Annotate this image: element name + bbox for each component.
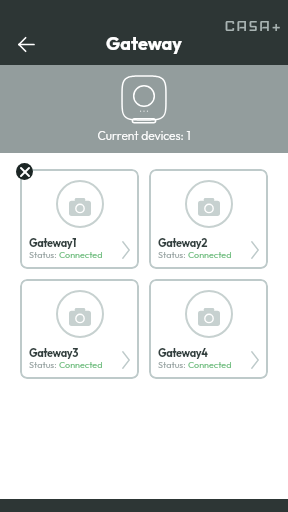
staticText: Gateway <box>0 32 288 55</box>
staticText: Status: <box>158 249 188 260</box>
staticText: Gateway2 <box>158 236 207 250</box>
button[interactable]: Gateway3 <box>20 279 139 379</box>
staticText: Status: <box>158 359 188 370</box>
staticText: Connected <box>188 249 232 260</box>
staticText: Current devices: 1 <box>0 128 288 143</box>
button[interactable]: Gateway2 <box>149 169 268 269</box>
staticText: Connected <box>59 249 103 260</box>
button[interactable]: Gateway4 <box>149 279 268 379</box>
staticText: Gateway3 <box>29 346 78 360</box>
staticText: Status: <box>29 249 59 260</box>
staticText: Gateway4 <box>158 346 208 360</box>
button[interactable]: Remove Gateway1 <box>16 163 33 180</box>
staticText: Status: <box>29 359 59 370</box>
staticText: Gateway1 <box>29 236 76 250</box>
button[interactable]: Back <box>12 30 40 58</box>
button[interactable]: Gateway1 <box>20 169 139 269</box>
staticText: Connected <box>188 359 232 370</box>
staticText: CASA+ <box>224 16 282 35</box>
staticText: Connected <box>59 359 103 370</box>
